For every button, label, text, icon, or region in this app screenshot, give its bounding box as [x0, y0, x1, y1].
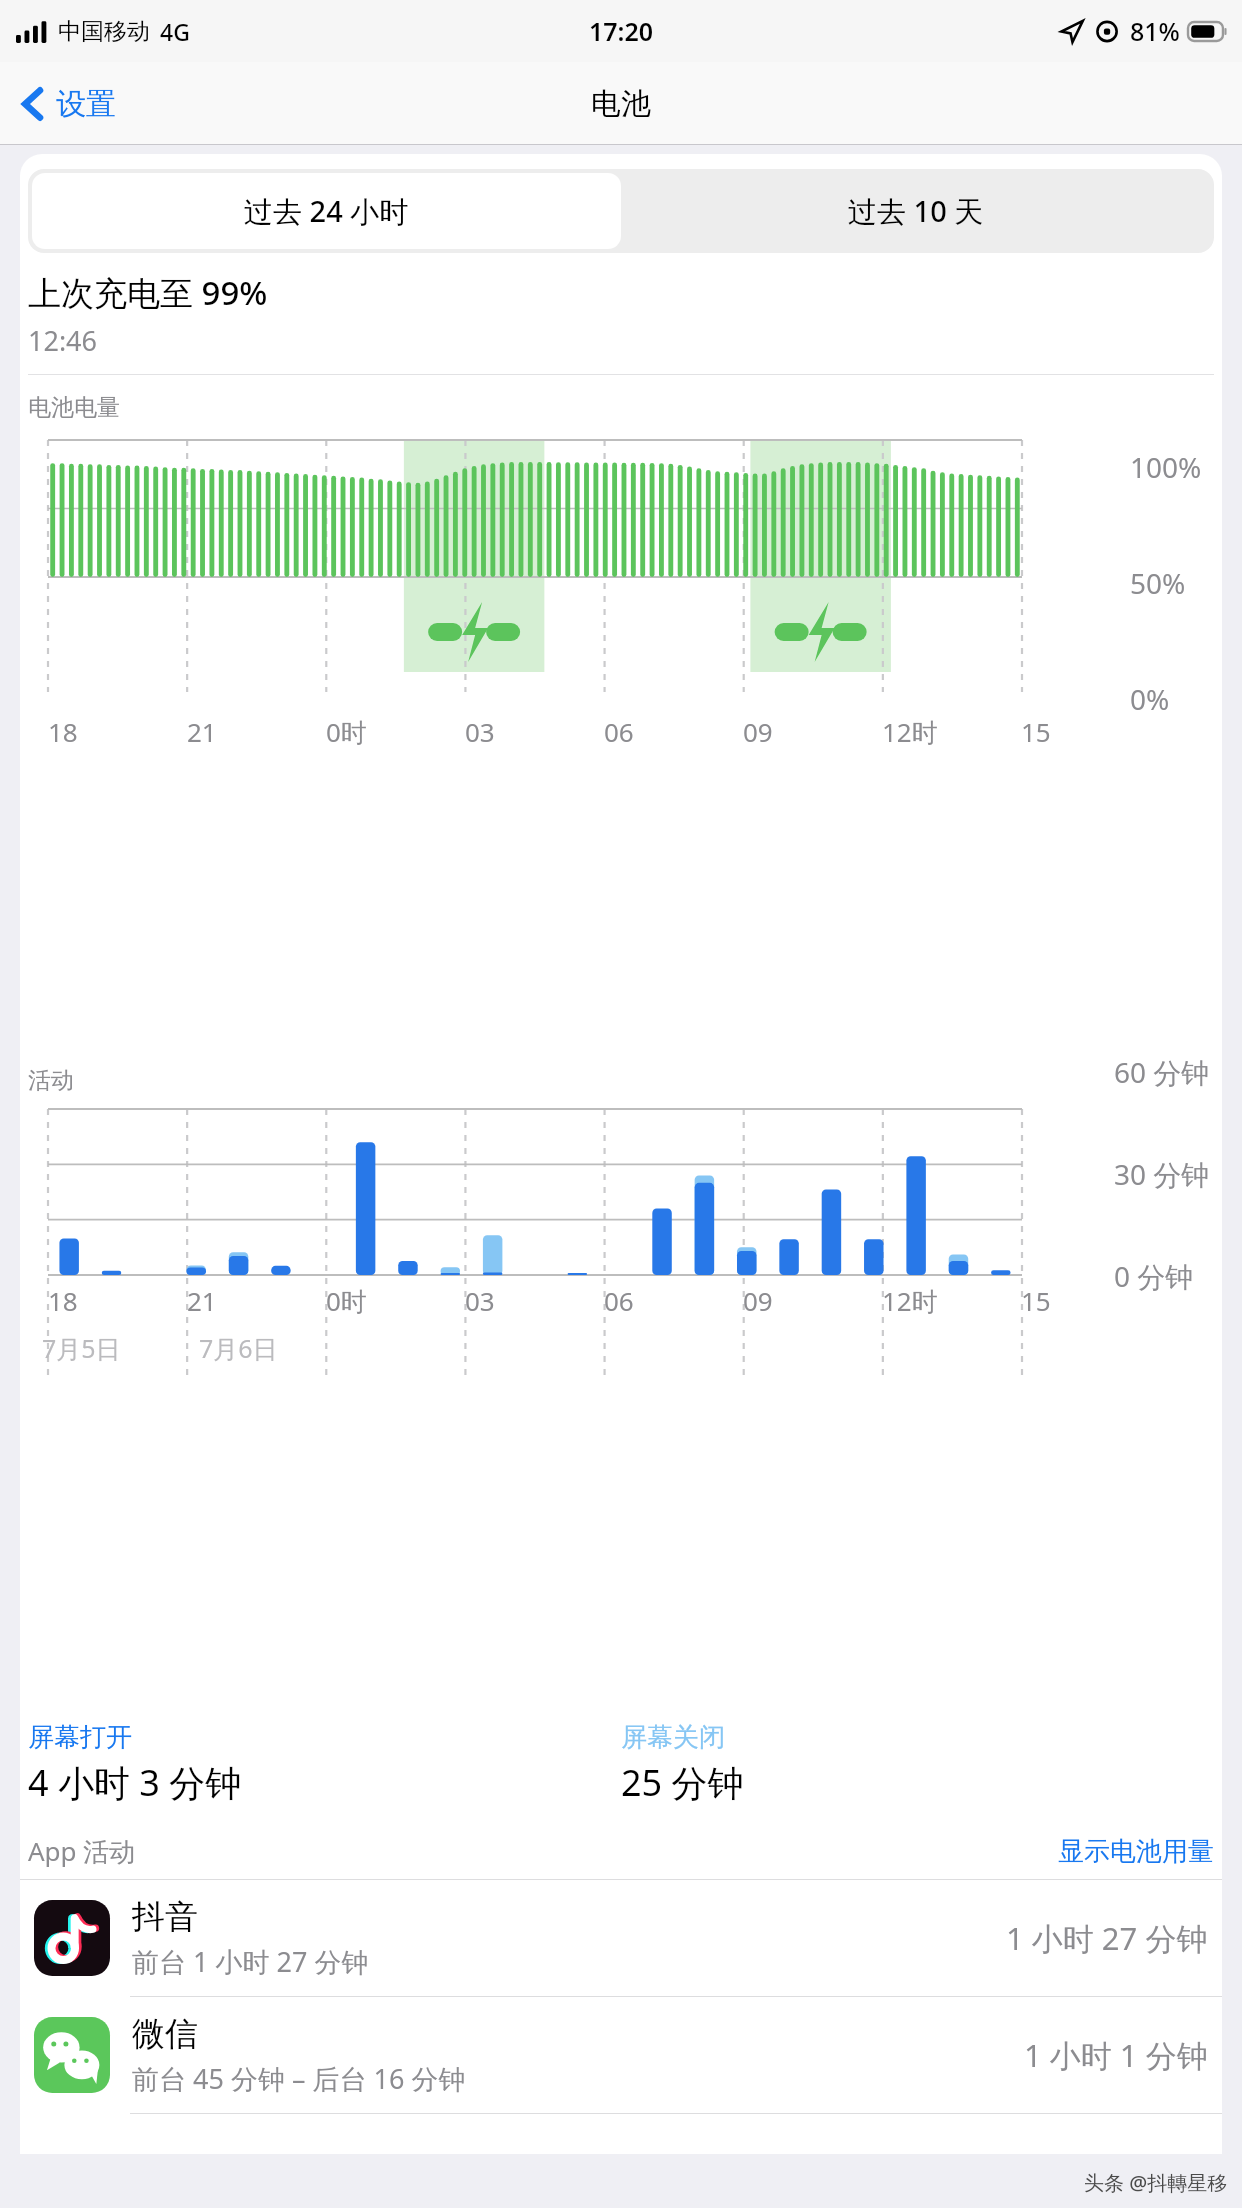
staticText: 09	[743, 1283, 773, 1318]
staticText: 81%	[1130, 14, 1180, 48]
staticText: 屏幕打开	[28, 1721, 132, 1754]
staticText: 100%	[1130, 448, 1202, 486]
staticText: 前台 45 分钟 – 后台 16 分钟	[132, 2060, 466, 2097]
staticText: 21	[187, 1283, 217, 1318]
button[interactable]: 抖音	[20, 1880, 1222, 1996]
staticText: 前台 1 小时 27 分钟	[132, 1943, 369, 1980]
staticText: App 活动	[28, 1833, 136, 1869]
staticText: 17:20	[589, 14, 654, 48]
staticText: 50%	[1130, 564, 1186, 602]
staticText: 4 小时 3 分钟	[28, 1758, 242, 1807]
staticText: 25 分钟	[621, 1758, 744, 1807]
staticText: 30 分钟	[1114, 1155, 1210, 1193]
staticText: 7月6日	[199, 1331, 278, 1365]
staticText: 7月5日	[42, 1331, 121, 1365]
staticText: 过去 10 天	[848, 191, 984, 231]
button[interactable]: 过去 10 天	[621, 173, 1210, 249]
staticText: 15	[1021, 714, 1051, 749]
button[interactable]: 微信	[20, 1997, 1222, 2113]
staticText: 06	[604, 714, 634, 749]
staticText: 电池电量	[28, 393, 120, 422]
staticText: 1 小时 27 分钟	[1006, 1917, 1208, 1959]
staticText: 4G	[160, 16, 190, 47]
button[interactable]: 显示电池用量	[1058, 1835, 1214, 1868]
button[interactable]: 过去 24 小时	[32, 173, 621, 249]
staticText: 12时	[882, 1283, 938, 1319]
button[interactable]: 屏幕打开	[28, 1721, 621, 1807]
staticText: 电池	[591, 85, 651, 123]
staticText: 头条 @抖轉星移	[1084, 2169, 1228, 2196]
staticText: 0 分钟	[1114, 1257, 1194, 1295]
staticText: 03	[465, 714, 495, 749]
staticText: 设置	[56, 85, 116, 123]
staticText: 屏幕关闭	[621, 1721, 725, 1754]
staticText: 21	[187, 714, 217, 749]
staticText: 09	[743, 714, 773, 749]
staticText: 活动	[28, 1066, 74, 1095]
staticText: 12时	[882, 714, 938, 750]
staticText: 上次充电至 99%	[28, 270, 268, 315]
staticText: 中国移动	[58, 17, 150, 46]
staticText: 12:46	[28, 322, 98, 359]
staticText: 0时	[326, 1283, 367, 1319]
staticText: 显示电池用量	[1058, 1835, 1214, 1868]
staticText: 03	[465, 1283, 495, 1318]
staticText: 微信	[132, 2013, 198, 2055]
staticText: 抖音	[132, 1896, 198, 1938]
staticText: 06	[604, 1283, 634, 1318]
staticText: 1 小时 1 分钟	[1024, 2034, 1208, 2076]
button[interactable]: 屏幕关闭	[621, 1721, 1214, 1807]
staticText: 15	[1021, 1283, 1051, 1318]
staticText: 0%	[1130, 680, 1170, 718]
staticText: 18	[48, 714, 78, 749]
staticText: 0时	[326, 714, 367, 750]
staticText: 过去 24 小时	[244, 191, 409, 231]
staticText: 18	[48, 1283, 78, 1318]
staticText: 60 分钟	[1114, 1053, 1210, 1091]
button[interactable]: 设置	[0, 77, 132, 131]
